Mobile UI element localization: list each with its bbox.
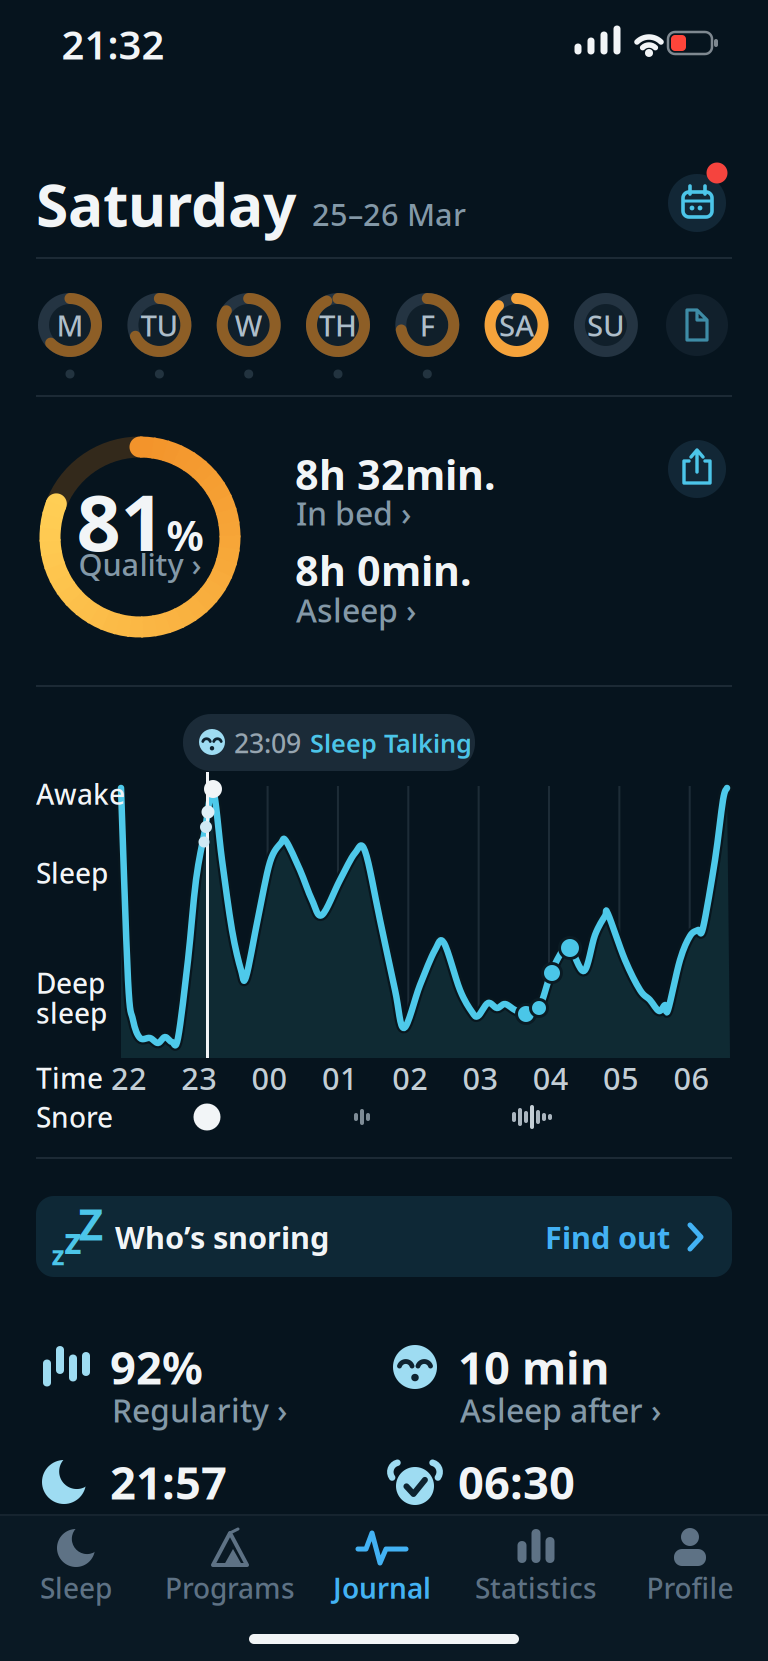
button[interactable]: TH [306,293,370,357]
staticText: 8h 0min. [295,543,472,597]
button[interactable]: SA [485,293,549,357]
staticText: 25–26 Mar [312,194,466,234]
staticText: 06:30 [458,1452,575,1512]
staticText: 04 [533,1058,569,1098]
staticText: sleep [36,994,107,1032]
staticText: Sleep [36,854,108,892]
button[interactable]: Sleep [0,1513,153,1609]
button[interactable]: Regularity 92% [108,1345,388,1431]
staticText: Time [36,1059,103,1097]
staticText: Asleep after › [460,1389,661,1431]
staticText: 92% [110,1337,203,1397]
staticText: Programs [165,1569,295,1607]
staticText: Profile [646,1569,733,1607]
button[interactable]: Play snore clip at 23 [193,1103,220,1130]
staticText: Sleep [40,1569,112,1607]
button[interactable]: Who's snoring — find out [36,1196,732,1277]
staticText: 10 min [458,1337,609,1397]
staticText: Snore [36,1098,113,1136]
staticText: Who’s snoring [115,1217,329,1257]
staticText: F [420,305,435,344]
staticText: Z [78,1196,103,1252]
button[interactable]: W [217,293,281,357]
button[interactable]: In bed 8h 32min [295,454,595,532]
button[interactable]: Programs [153,1513,307,1609]
button[interactable]: Calendar [668,174,726,232]
button[interactable]: F [395,293,459,357]
staticText: 22 [111,1058,147,1098]
staticText: Saturday [36,165,296,243]
button[interactable]: Journal [305,1513,459,1609]
button[interactable]: Sleep talking at 23:09 [183,714,475,771]
staticText: 02 [392,1058,428,1098]
staticText: z [64,1216,82,1264]
staticText: TH [319,305,357,344]
button[interactable]: Sleep notes [665,293,729,357]
staticText: Quality › [78,544,201,584]
staticText: Find out [545,1217,670,1257]
staticText: 21:57 [110,1452,227,1512]
staticText: 03 [462,1058,498,1098]
staticText: Statistics [475,1569,597,1607]
staticText: 81 [76,470,164,572]
staticText: 8h 32min. [295,447,496,501]
staticText: z [51,1237,64,1273]
staticText: SA [499,305,534,344]
button[interactable]: Asleep after 10 min [456,1345,736,1431]
button[interactable]: Sleep quality 81% [34,431,246,643]
staticText: 00 [252,1058,288,1098]
staticText: SU [587,305,625,344]
button[interactable]: Asleep 8h 0min [295,550,595,628]
staticText: Asleep › [296,589,416,631]
staticText: 06 [673,1058,709,1098]
button[interactable]: Profile [613,1513,767,1609]
staticText: In bed › [296,492,411,534]
staticText: Journal [333,1569,431,1607]
button[interactable]: Statistics [459,1513,613,1609]
staticText: 05 [603,1058,639,1098]
staticText: 23:09 [234,725,301,761]
staticText: W [235,305,263,344]
staticText: Sleep Talking [310,726,472,760]
staticText: TU [140,305,178,344]
button[interactable]: Sunday [574,293,638,357]
button[interactable]: M [38,293,102,357]
staticText: % [166,507,203,562]
staticText: Awake [36,775,125,813]
staticText: Regularity › [112,1389,287,1431]
staticText: 21:32 [61,17,164,70]
staticText: M [56,305,83,344]
button[interactable]: Share [668,440,726,498]
staticText: 01 [322,1058,358,1098]
staticText: Deep [36,964,105,1002]
staticText: 23 [181,1058,217,1098]
button[interactable]: TU [127,293,191,357]
